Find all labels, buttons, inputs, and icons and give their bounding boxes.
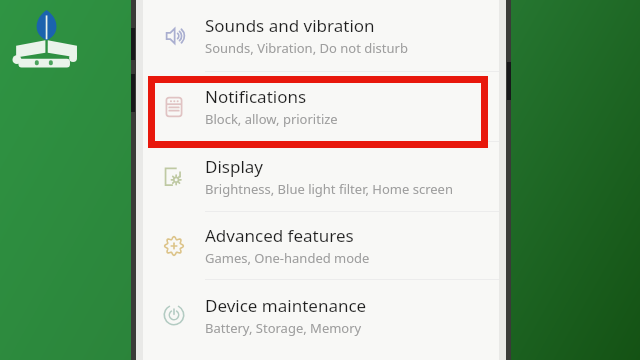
- staticText: Notifications: [205, 85, 307, 108]
- staticText: Battery, Storage, Memory: [205, 319, 362, 337]
- staticText: Sounds, Vibration, Do not disturb: [205, 39, 408, 57]
- other: Notifications highlighted: [148, 76, 488, 148]
- staticText: Sounds and vibration: [205, 14, 375, 37]
- staticText: Brightness, Blue light filter, Home scre…: [205, 180, 453, 198]
- button[interactable]: Sounds and vibration: [143, 0, 499, 71]
- staticText: Advanced features: [205, 224, 354, 247]
- button[interactable]: Notifications: [143, 72, 499, 141]
- button[interactable]: Display: [143, 142, 499, 211]
- staticText: Block, allow, prioritize: [205, 110, 338, 128]
- button[interactable]: Advanced features: [143, 212, 499, 279]
- button[interactable]: Device maintenance: [143, 280, 499, 350]
- staticText: Games, One-handed mode: [205, 249, 370, 267]
- staticText: Display: [205, 155, 263, 178]
- staticText: Device maintenance: [205, 294, 367, 317]
